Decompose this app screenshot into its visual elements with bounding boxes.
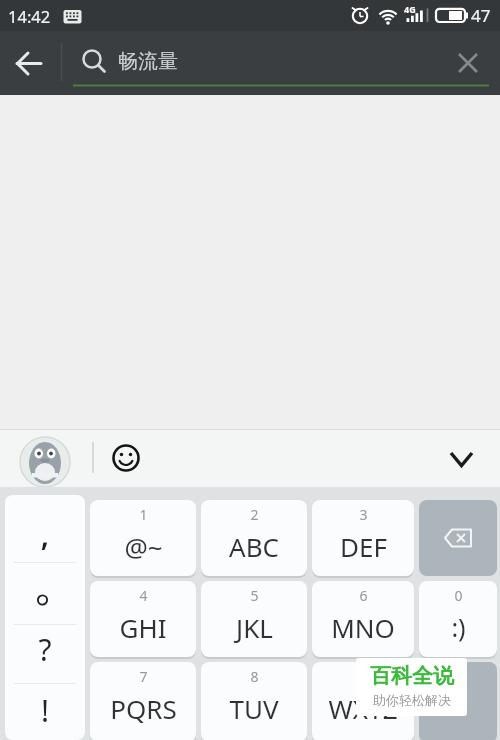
button[interactable] <box>436 438 486 480</box>
button[interactable]: 1 <box>90 500 196 576</box>
staticText: 8 <box>250 667 259 686</box>
button[interactable] <box>18 435 72 487</box>
staticText: PQRS <box>110 691 177 726</box>
staticText: :) <box>451 610 466 644</box>
button[interactable] <box>419 662 497 740</box>
staticText: ? <box>5 629 85 677</box>
staticText: , <box>5 514 85 562</box>
staticText: 4 <box>139 586 148 605</box>
staticText: WXYZ <box>328 691 398 726</box>
staticText: 助你轻松解决 <box>373 692 451 708</box>
button[interactable]: 0 <box>419 581 497 657</box>
staticText: 14:42 <box>8 5 68 31</box>
button[interactable]: 6 <box>312 581 414 657</box>
staticText: 4G <box>404 3 424 17</box>
staticText: 5 <box>250 586 259 605</box>
staticText: 6 <box>359 586 368 605</box>
staticText: 1 <box>139 505 148 524</box>
staticText: TUV <box>229 691 279 726</box>
button[interactable] <box>5 495 85 740</box>
button[interactable]: 2 <box>201 500 307 576</box>
button[interactable] <box>0 31 61 95</box>
staticText: DEF <box>340 529 387 564</box>
staticText: 7 <box>139 667 148 686</box>
button[interactable]: 5 <box>201 581 307 657</box>
staticText: 畅流量 <box>118 49 238 81</box>
staticText: JKL <box>236 610 273 645</box>
staticText: 3 <box>359 505 368 524</box>
staticText: 2 <box>250 505 259 524</box>
staticText: ABC <box>229 529 279 564</box>
button[interactable]: 4 <box>90 581 196 657</box>
button[interactable]: 7 <box>90 662 196 740</box>
staticText: @~ <box>124 529 163 564</box>
button[interactable] <box>440 35 496 91</box>
button[interactable]: 9 <box>312 662 414 740</box>
button[interactable]: 3 <box>312 500 414 576</box>
button[interactable]: 8 <box>201 662 307 740</box>
button[interactable] <box>106 438 146 478</box>
staticText: GHI <box>119 610 167 645</box>
staticText: 0 <box>454 586 463 605</box>
staticText: MNO <box>331 610 395 645</box>
button[interactable] <box>419 500 497 576</box>
staticText: ! <box>5 690 85 738</box>
staticText: 47 <box>471 4 500 31</box>
staticText: 百科全说 <box>370 663 454 689</box>
